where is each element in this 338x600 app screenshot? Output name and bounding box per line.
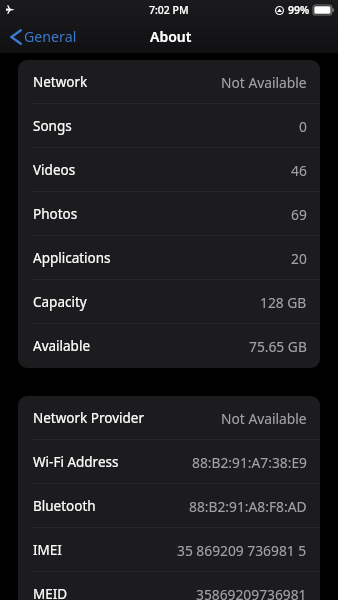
- staticText: Photos: [33, 205, 78, 223]
- staticText: Network: [33, 73, 88, 91]
- button[interactable]: Network: [18, 60, 320, 104]
- staticText: Songs: [33, 117, 72, 135]
- button[interactable]: Bluetooth: [18, 484, 320, 528]
- staticText: Capacity: [33, 293, 87, 311]
- button[interactable]: Applications: [18, 236, 320, 280]
- staticText: 69: [291, 205, 307, 224]
- staticText: About: [150, 27, 192, 46]
- button[interactable]: General: [0, 27, 85, 46]
- other: Battery 99 percent: [313, 5, 334, 15]
- staticText: 7:02 PM: [149, 3, 189, 17]
- staticText: Applications: [33, 249, 111, 267]
- staticText: 128 GB: [260, 293, 307, 312]
- staticText: 88:B2:91:A8:F8:AD: [189, 497, 307, 516]
- staticText: 0: [299, 117, 307, 136]
- staticText: Network Provider: [33, 409, 145, 427]
- staticText: 88:B2:91:A7:38:E9: [192, 453, 307, 472]
- button[interactable]: Songs: [18, 104, 320, 148]
- staticText: 99%: [288, 3, 310, 17]
- button[interactable]: Photos: [18, 192, 320, 236]
- staticText: IMEI: [33, 541, 62, 559]
- button[interactable]: MEID: [18, 572, 320, 600]
- staticText: 46: [291, 161, 307, 180]
- other: Location services active: [275, 6, 284, 15]
- staticText: 35 869209 736981 5: [177, 541, 307, 560]
- button[interactable]: Wi-Fi Address: [18, 440, 320, 484]
- staticText: Not Available: [221, 409, 307, 428]
- staticText: 20: [291, 249, 307, 268]
- staticText: Bluetooth: [33, 497, 96, 515]
- button[interactable]: Network Provider: [18, 396, 320, 440]
- button[interactable]: Videos: [18, 148, 320, 192]
- other: Airplane mode: [5, 5, 15, 14]
- staticText: General: [24, 27, 77, 46]
- staticText: Available: [33, 337, 90, 355]
- staticText: Videos: [33, 161, 76, 179]
- button[interactable]: Available: [18, 324, 320, 368]
- staticText: Not Available: [221, 73, 307, 92]
- button[interactable]: IMEI: [18, 528, 320, 572]
- button[interactable]: Capacity: [18, 280, 320, 324]
- staticText: MEID: [33, 585, 68, 600]
- staticText: Wi-Fi Address: [33, 453, 119, 471]
- staticText: 35869209736981: [196, 585, 307, 600]
- staticText: 75.65 GB: [249, 337, 307, 356]
